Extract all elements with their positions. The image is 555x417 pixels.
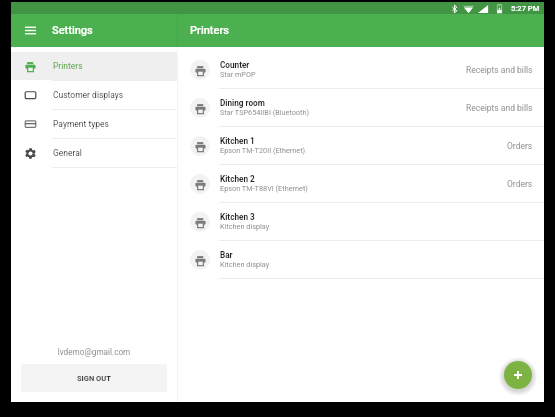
staticText: Dining room xyxy=(220,98,265,108)
staticText: Payment types xyxy=(53,119,109,129)
staticText: Settings xyxy=(52,24,93,37)
button[interactable]: Customer displays xyxy=(11,81,177,109)
staticText: Printers xyxy=(53,61,83,71)
staticText: Customer displays xyxy=(53,90,124,100)
staticText: Receipts and bills xyxy=(466,65,533,75)
button[interactable]: General xyxy=(11,139,177,167)
button[interactable]: Add printer xyxy=(504,361,532,389)
staticText: Kitchen display xyxy=(220,222,270,231)
staticText: lvdemo@gmail.com xyxy=(11,347,177,357)
staticText: Star TSP654IIBI (Bluetooth) xyxy=(220,108,309,117)
button[interactable]: SIGN OUT xyxy=(21,364,167,392)
staticText: Counter xyxy=(220,60,250,70)
staticText: Orders xyxy=(507,141,533,151)
staticText: SIGN OUT xyxy=(77,374,111,383)
staticText: Epson TM-T88VI (Ethernet) xyxy=(220,184,308,193)
button[interactable]: Payment types xyxy=(11,110,177,138)
staticText: General xyxy=(53,148,82,158)
button[interactable]: Kitchen 2 xyxy=(178,165,544,202)
staticText: Bar xyxy=(220,250,233,260)
button[interactable]: Counter xyxy=(178,51,544,88)
button[interactable]: Open navigation menu xyxy=(11,14,177,47)
staticText: Receipts and bills xyxy=(466,103,533,113)
staticText: Star mPOP xyxy=(220,70,256,79)
staticText: Kitchen 1 xyxy=(220,136,255,146)
staticText: Epson TM-T20II (Ethernet) xyxy=(220,146,306,155)
button[interactable]: Bar xyxy=(178,241,544,278)
button[interactable]: Kitchen 1 xyxy=(178,127,544,164)
staticText: Printers xyxy=(190,24,229,37)
staticText: Kitchen display xyxy=(220,260,270,269)
staticText: Orders xyxy=(507,179,533,189)
other: Open navigation menu xyxy=(25,26,36,35)
button[interactable]: Printers xyxy=(11,52,177,80)
button[interactable]: Kitchen 3 xyxy=(178,203,544,240)
staticText: 5:27 PM xyxy=(511,4,540,13)
staticText: Kitchen 3 xyxy=(220,212,255,222)
button[interactable]: Dining room xyxy=(178,89,544,126)
staticText: Kitchen 2 xyxy=(220,174,255,184)
